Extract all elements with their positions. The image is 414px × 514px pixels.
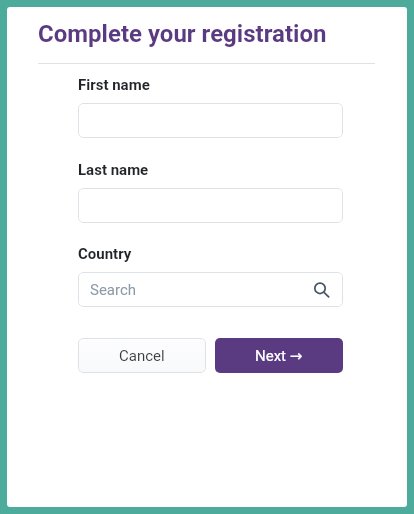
staticText: Cancel <box>119 347 165 365</box>
button[interactable]: Cancel <box>78 338 206 373</box>
button[interactable] <box>78 103 343 138</box>
other: Search <box>314 281 332 299</box>
staticText: Complete your registration <box>38 20 327 48</box>
staticText: First name <box>78 76 150 94</box>
staticText: Search <box>90 281 137 299</box>
button[interactable] <box>78 188 343 223</box>
staticText: Country <box>78 245 132 263</box>
staticText: Last name <box>78 161 149 179</box>
button[interactable]: Next → <box>215 338 343 373</box>
staticText: Next → <box>255 347 303 365</box>
button[interactable]: Search <box>78 272 343 307</box>
